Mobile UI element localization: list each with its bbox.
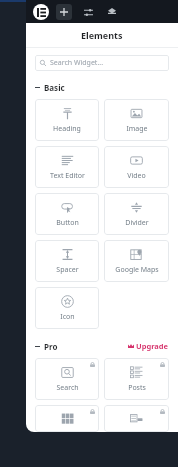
staticText: Image [126, 124, 148, 134]
button[interactable]: Text Editor [35, 146, 99, 188]
button[interactable]: Search [35, 358, 99, 400]
staticText: Pro [44, 341, 58, 352]
staticText: Google Maps [115, 265, 159, 275]
staticText: Posts [128, 383, 146, 393]
staticText: Spacer [56, 265, 79, 275]
button[interactable]: Add element [56, 4, 72, 20]
staticText: Basic [44, 82, 65, 93]
button[interactable]: Google Maps [104, 240, 169, 282]
button[interactable]: Search Widget... [35, 55, 169, 71]
button[interactable]: Spacer [35, 240, 99, 282]
staticText: Icon [60, 312, 75, 322]
button[interactable]: Pro widget [104, 405, 169, 432]
button[interactable]: Structure [104, 4, 120, 20]
button[interactable]: Heading [35, 99, 99, 141]
button[interactable]: Video [104, 146, 169, 188]
staticText: Upgrade [136, 341, 169, 351]
staticText: Elements [81, 29, 123, 41]
button[interactable]: Image [104, 99, 169, 141]
button[interactable]: Site settings [80, 4, 96, 20]
button[interactable]: Upgrade [128, 341, 169, 351]
button[interactable]: Elementor menu [33, 4, 49, 20]
staticText: Divider [125, 218, 149, 228]
button[interactable]: Pro [35, 340, 169, 352]
button[interactable]: Button [35, 193, 99, 235]
button[interactable]: Posts [104, 358, 169, 400]
staticText: Search Widget... [50, 58, 104, 68]
staticText: Search [56, 383, 79, 393]
staticText: Button [56, 218, 79, 228]
staticText: Text Editor [50, 171, 85, 181]
button[interactable]: Pro widget [35, 405, 99, 432]
button[interactable]: Basic [35, 81, 169, 93]
staticText: Video [127, 171, 146, 181]
staticText: Heading [53, 124, 81, 134]
button[interactable]: Icon [35, 287, 99, 329]
button[interactable]: Divider [104, 193, 169, 235]
